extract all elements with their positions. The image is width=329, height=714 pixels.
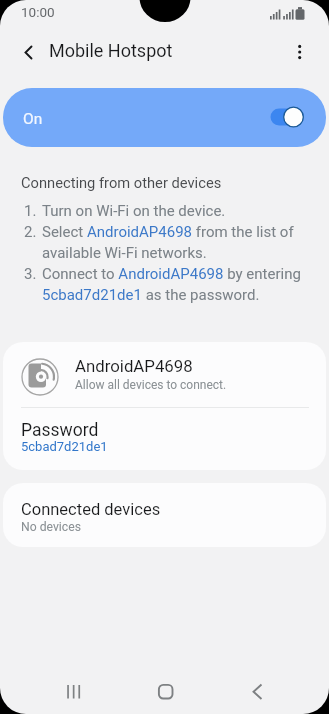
staticText: available Wi-Fi networks.	[42, 244, 207, 262]
staticText: 5cbad7d21de1	[21, 439, 108, 454]
staticText: 5cbad7d21de1 as the password.	[42, 286, 260, 304]
staticText: No devices	[21, 520, 81, 534]
staticText: 2.	[24, 223, 37, 241]
staticText: Turn on Wi-Fi on the device.	[42, 202, 226, 220]
staticText: Mobile Hotspot	[49, 40, 173, 61]
button[interactable]	[286, 38, 314, 66]
staticText: Select AndroidAP4698 from the list of	[42, 223, 294, 241]
staticText: Allow all devices to connect.	[75, 378, 227, 392]
button[interactable]	[3, 483, 326, 547]
staticText: 3.	[24, 265, 37, 283]
staticText: Connecting from other devices	[21, 174, 222, 191]
button[interactable]	[56, 674, 91, 709]
button[interactable]	[3, 342, 326, 407]
staticText: On	[23, 110, 43, 128]
button[interactable]	[3, 88, 326, 147]
button[interactable]	[240, 674, 275, 709]
button[interactable]	[3, 408, 326, 470]
staticText: 10:00	[21, 4, 55, 20]
staticText: Connected devices	[21, 500, 161, 519]
button[interactable]	[8, 36, 44, 68]
staticText: 1.	[24, 202, 37, 220]
staticText: AndroidAP4698	[75, 356, 193, 376]
staticText: Password	[21, 420, 99, 441]
staticText: Connect to AndroidAP4698 by entering	[42, 265, 301, 283]
button[interactable]	[148, 674, 183, 709]
